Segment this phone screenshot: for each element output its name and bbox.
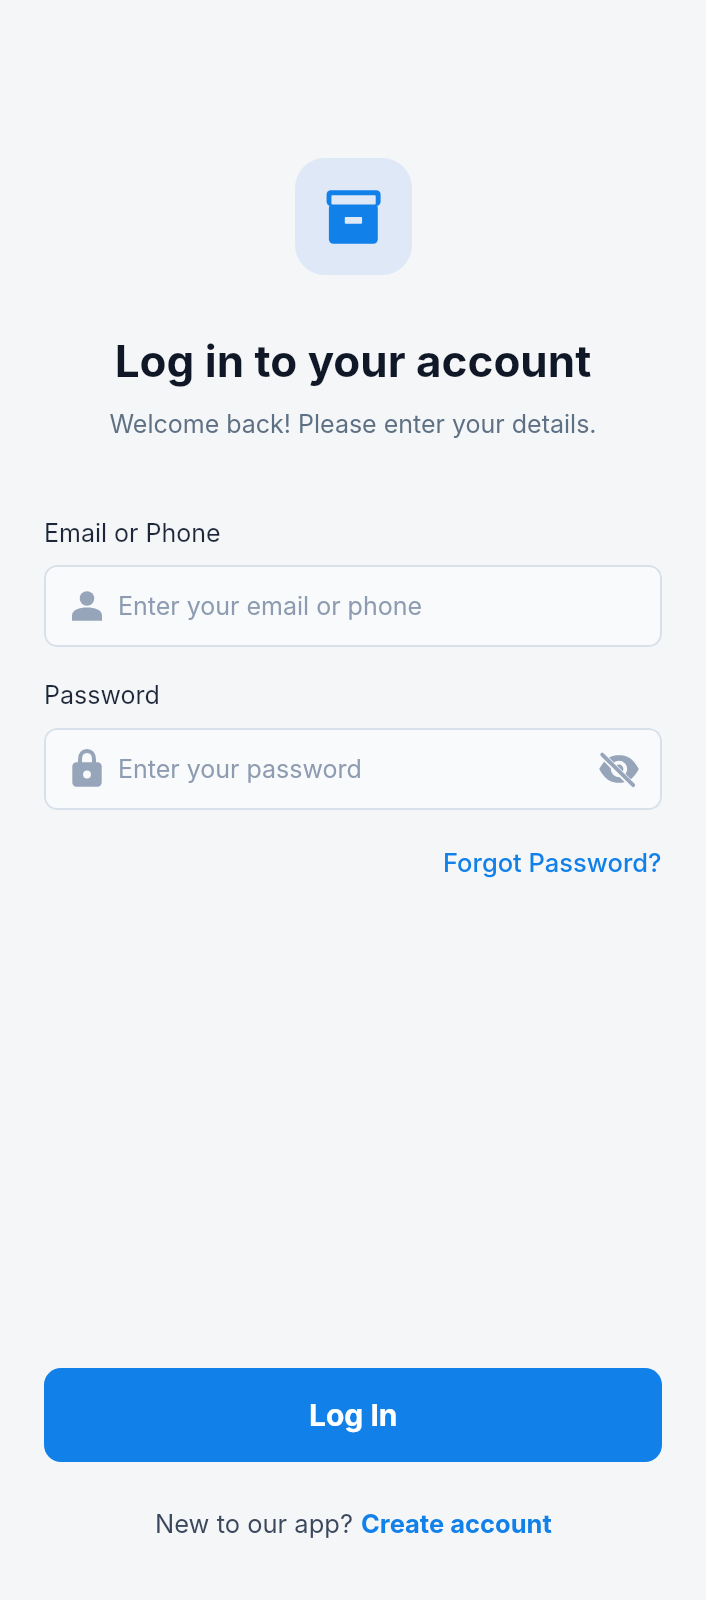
button[interactable]: Log In [44,1368,662,1462]
staticText: Log In [309,1397,398,1433]
button[interactable]: Show password [584,729,654,809]
staticText: Create account [361,1508,552,1539]
button[interactable]: Forgot Password? [423,839,681,886]
staticText: Welcome back! Please enter your details. [0,409,706,439]
staticText: Enter your password [118,754,362,784]
staticText: Enter your email or phone [118,591,423,621]
staticText: Forgot Password? [443,847,662,878]
staticText: Log in to your account [0,334,706,387]
staticText: Email or Phone [44,518,221,548]
staticText: New to our app? [155,1508,361,1539]
button[interactable]: Create account [361,1508,552,1539]
button[interactable]: Enter your password [44,728,662,810]
staticText: Password [44,680,160,710]
button[interactable]: Enter your email or phone [44,565,662,647]
